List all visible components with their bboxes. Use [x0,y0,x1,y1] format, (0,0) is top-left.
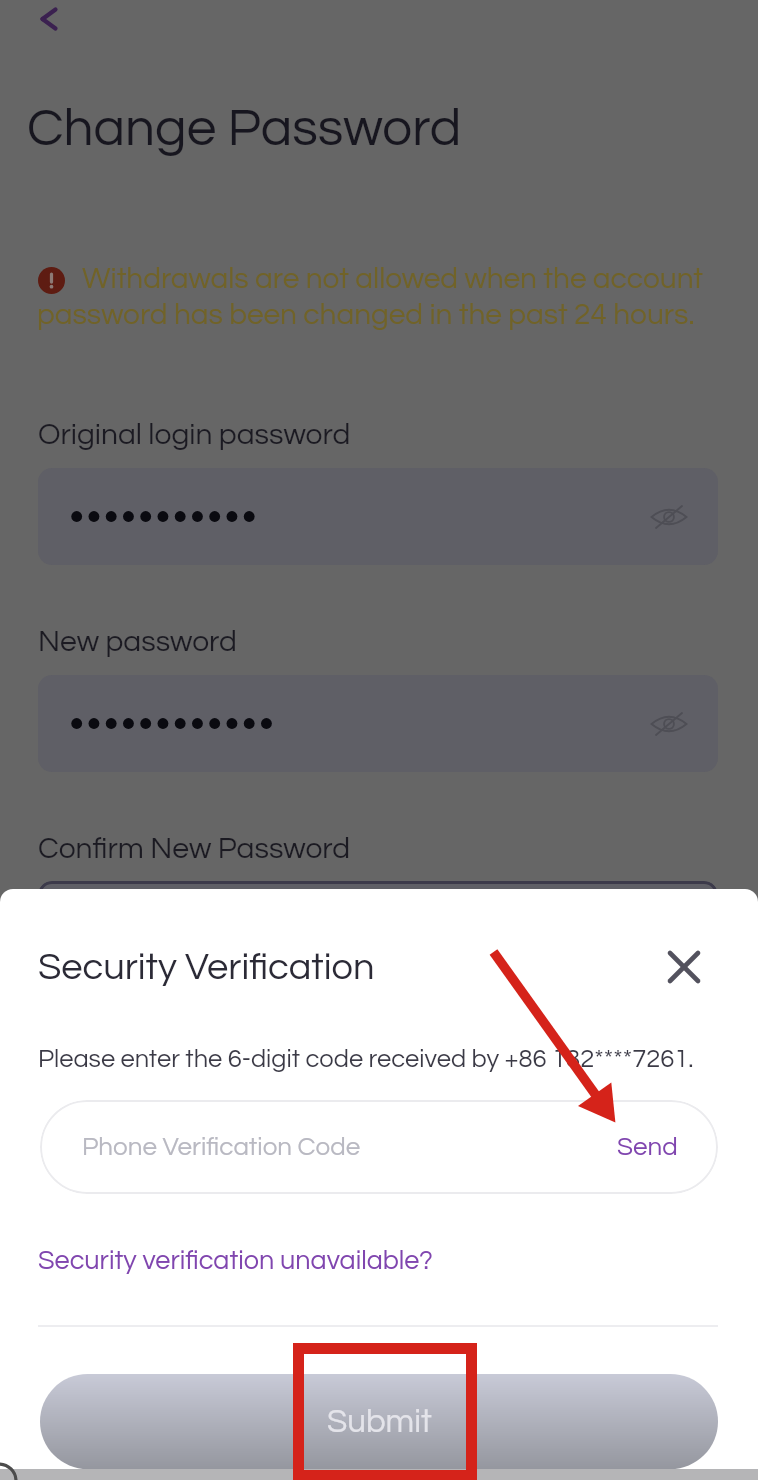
staticText: Security verification unavailable? [38,1247,433,1275]
staticText: Change Password [27,102,462,157]
staticText: Send [617,1134,678,1161]
staticText: Confirm New Password [38,833,351,864]
button[interactable]: Submit [40,1374,718,1469]
button[interactable]: Toggle password visibility [643,698,695,750]
button[interactable]: Back [22,0,76,46]
staticText: Please enter the 6-digit code received b… [38,1046,694,1072]
button[interactable]: Close [656,939,712,995]
staticText: Submit [327,1405,432,1439]
staticText: Phone Verification Code [82,1134,361,1161]
button[interactable]: Send [577,1114,718,1181]
staticText: Security Verification [38,948,375,987]
staticText: New password [38,626,237,657]
button[interactable]: Toggle password visibility [643,491,695,543]
staticText: Original login password [38,419,351,450]
button[interactable]: Security verification unavailable? [38,1247,433,1275]
staticText: password has been changed in the past 24… [37,300,695,331]
staticText: Withdrawals are not allowed when the acc… [82,264,703,295]
